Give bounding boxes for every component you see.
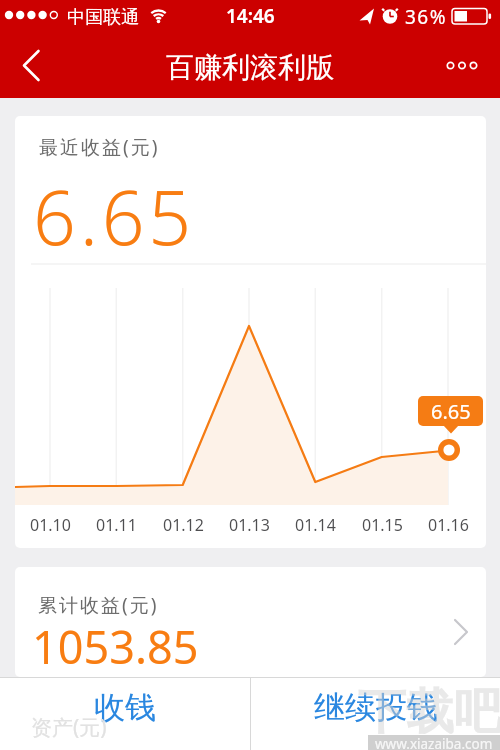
staticText: 01.15 <box>362 514 403 536</box>
staticText: 6.65 <box>33 165 195 267</box>
button[interactable]: 收钱 <box>0 678 250 750</box>
button[interactable] <box>8 44 56 88</box>
staticText: 最近收益(元) <box>39 134 160 160</box>
staticText: 下载吧 <box>358 682 500 742</box>
button[interactable]: 累计收益(元) <box>15 567 486 677</box>
staticText: 1053.85 <box>32 616 199 677</box>
button[interactable]: 继续投钱 <box>251 678 500 750</box>
staticText: 累计收益(元) <box>38 592 159 618</box>
staticText: www.xiazaiba.com <box>375 735 493 750</box>
staticText: 01.13 <box>229 514 270 536</box>
staticText: 继续投钱 <box>314 688 438 727</box>
staticText: 6.65 <box>431 398 471 425</box>
staticText: 14:46 <box>226 3 275 29</box>
staticText: 资产(元) <box>31 713 107 742</box>
staticText: 中国联通 <box>67 6 139 29</box>
staticText: 36% <box>405 4 448 30</box>
staticText: 百赚利滚利版 <box>166 50 334 85</box>
staticText: 收钱 <box>94 688 156 727</box>
button[interactable] <box>436 44 492 88</box>
staticText: 01.11 <box>96 514 137 536</box>
staticText: 01.16 <box>428 514 469 536</box>
staticText: 01.10 <box>30 514 71 536</box>
staticText: 01.12 <box>163 514 204 536</box>
staticText: 01.14 <box>295 514 336 536</box>
